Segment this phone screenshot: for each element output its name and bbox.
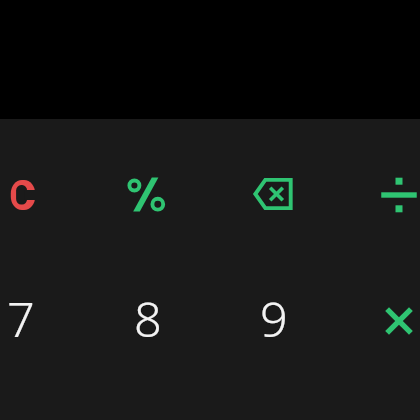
staticText: 8	[134, 285, 162, 351]
button[interactable]: 9	[211, 255, 337, 381]
button[interactable]: Divide	[336, 132, 420, 258]
staticText: 9	[260, 285, 288, 351]
button[interactable]: Percent	[83, 132, 209, 258]
button[interactable]: Multiply	[336, 258, 420, 384]
button[interactable]: Backspace	[210, 131, 336, 257]
button[interactable]: 7	[0, 255, 84, 381]
button[interactable]: Clear	[0, 132, 86, 258]
staticText: 7	[7, 285, 35, 351]
button[interactable]: 8	[85, 255, 211, 381]
